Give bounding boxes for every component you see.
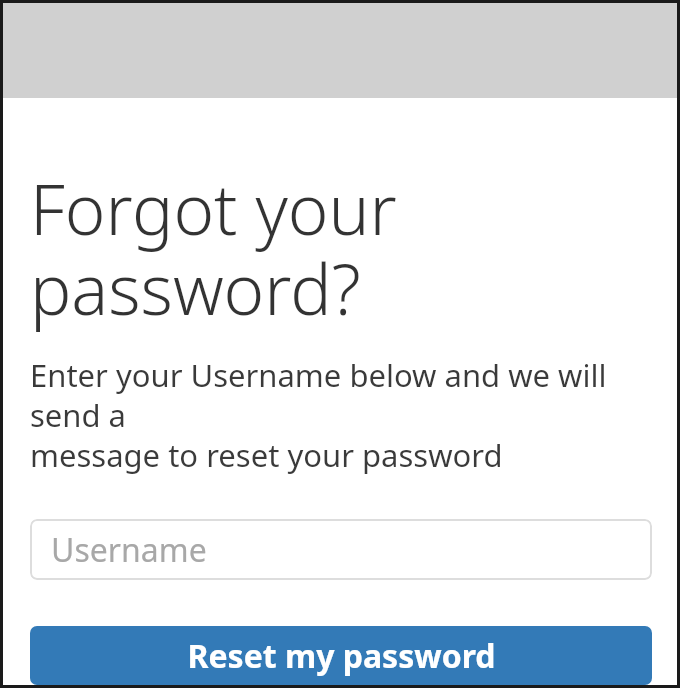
staticText: Reset my password (187, 634, 496, 678)
button[interactable]: Reset my password (30, 626, 652, 685)
staticText: Username (51, 528, 207, 572)
button[interactable]: Username (30, 519, 652, 580)
staticText: Enter your Username below and we will se… (30, 354, 652, 476)
staticText: Forgot your password? (30, 161, 397, 335)
